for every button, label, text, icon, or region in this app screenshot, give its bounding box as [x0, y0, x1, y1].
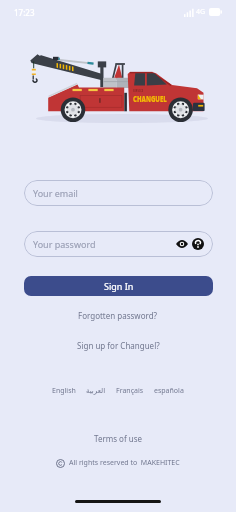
button[interactable]: Français — [111, 384, 149, 398]
staticText: Sign up for Changuel? — [77, 340, 160, 351]
staticText: SERVICE — [133, 88, 144, 93]
button[interactable]: Help — [192, 238, 204, 250]
button[interactable]: Your email — [24, 180, 213, 206]
button[interactable]: Terms of use — [91, 430, 146, 447]
staticText: All rights reserved to MAKEHITEC — [69, 458, 180, 468]
staticText: Your email — [33, 187, 78, 199]
staticText: Français — [116, 386, 144, 396]
button[interactable]: Show password — [176, 238, 188, 250]
button[interactable]: Your password — [24, 231, 213, 257]
staticText: CHANGUEL — [133, 93, 167, 105]
staticText: Forgotten password? — [78, 310, 158, 321]
staticText: Your password — [33, 238, 96, 250]
staticText: English — [52, 386, 76, 396]
staticText: española — [154, 386, 184, 396]
staticText: 4G — [196, 7, 206, 17]
button[interactable]: Sign In — [24, 276, 213, 296]
button[interactable]: العربية — [81, 385, 111, 397]
button[interactable]: Sign up for Changuel? — [74, 337, 163, 354]
button[interactable]: española — [149, 384, 189, 398]
staticText: Terms of use — [94, 433, 143, 444]
staticText: العربية — [86, 387, 106, 395]
staticText: Sign In — [104, 280, 134, 292]
staticText: 17:23 — [14, 7, 35, 18]
button[interactable]: Forgotten password? — [75, 307, 161, 324]
button[interactable]: English — [47, 384, 81, 398]
